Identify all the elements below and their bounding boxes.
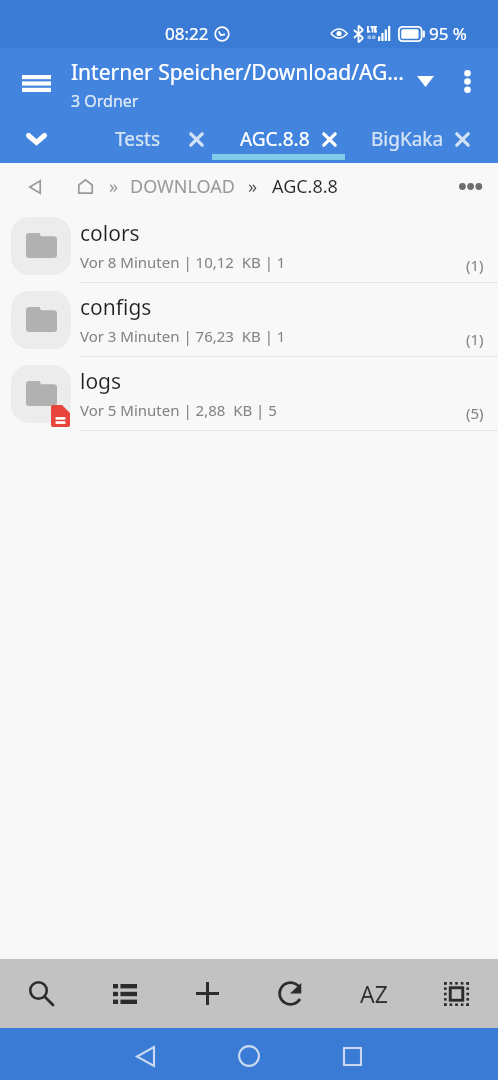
button[interactable]: configs bbox=[0, 283, 498, 357]
staticText: Interner Speicher/Download/AG… bbox=[71, 58, 404, 87]
staticText: logs bbox=[80, 367, 122, 396]
button[interactable]: List view bbox=[83, 959, 166, 1028]
staticText: 08:22 bbox=[165, 22, 209, 45]
staticText: Vor 3 Minuten | 76,23 KB | 1 bbox=[80, 326, 286, 346]
button[interactable]: Show open tabs bbox=[0, 115, 72, 163]
staticText: (1) bbox=[466, 329, 484, 349]
staticText: » bbox=[109, 174, 119, 199]
staticText: Vor 5 Minuten | 2,88 KB | 5 bbox=[80, 400, 277, 420]
staticText: (1) bbox=[466, 255, 484, 275]
button[interactable]: Home bbox=[74, 164, 96, 209]
staticText: colors bbox=[80, 219, 140, 248]
staticText: BigKaka bbox=[371, 126, 444, 152]
button[interactable]: DOWNLOAD bbox=[130, 174, 235, 199]
button[interactable]: Home bbox=[223, 1030, 275, 1080]
staticText: 3 Ordner bbox=[71, 90, 139, 112]
button[interactable]: Search bbox=[0, 959, 83, 1028]
button[interactable]: Back bbox=[119, 1030, 171, 1080]
button[interactable]: BigKaka bbox=[345, 115, 478, 163]
staticText: » bbox=[248, 174, 258, 199]
staticText: 95 % bbox=[429, 22, 467, 45]
staticText: Tests bbox=[115, 126, 161, 152]
button[interactable]: Go back bbox=[20, 164, 50, 209]
button[interactable]: More actions bbox=[448, 164, 492, 209]
button[interactable]: More options bbox=[443, 48, 491, 115]
staticText: AGC.8.8 bbox=[240, 126, 310, 152]
button[interactable]: Recent apps bbox=[326, 1030, 378, 1080]
staticText: (5) bbox=[466, 403, 484, 423]
button[interactable]: Expand path bbox=[405, 48, 445, 115]
staticText: Vor 8 Minuten | 10,12 KB | 1 bbox=[80, 252, 286, 272]
button[interactable]: AGC.8.8 bbox=[272, 174, 338, 199]
staticText: AGC.8.8 bbox=[272, 174, 338, 199]
staticText: AZ bbox=[360, 978, 388, 1009]
button[interactable]: Add bbox=[166, 959, 249, 1028]
button[interactable]: Sort A to Z bbox=[332, 959, 415, 1028]
button[interactable]: AGC.8.8 bbox=[212, 115, 345, 163]
button[interactable]: colors bbox=[0, 209, 498, 283]
staticText: configs bbox=[80, 293, 152, 322]
button[interactable]: Select items bbox=[415, 959, 498, 1028]
button[interactable]: Open navigation menu bbox=[0, 50, 72, 117]
button[interactable]: Tests bbox=[72, 115, 212, 163]
button[interactable]: Refresh bbox=[249, 959, 332, 1028]
button[interactable]: logs bbox=[0, 357, 498, 431]
staticText: DOWNLOAD bbox=[130, 174, 235, 199]
